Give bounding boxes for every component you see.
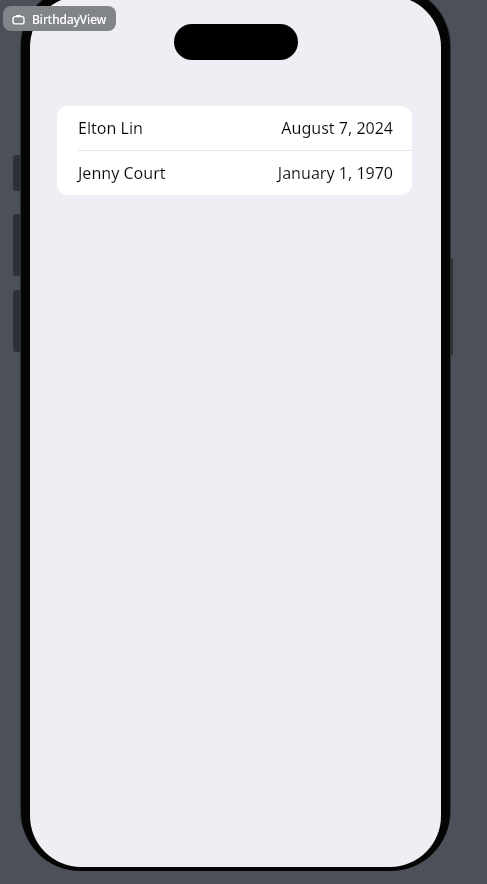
other: Preview — [12, 13, 25, 26]
staticText: August 7, 2024 — [281, 117, 393, 139]
button[interactable]: Jenny Court — [57, 151, 412, 195]
staticText: January 1, 1970 — [277, 162, 393, 184]
staticText: BirthdayView — [32, 11, 107, 27]
button[interactable]: Elton Lin — [57, 106, 412, 150]
staticText: Jenny Court — [78, 162, 166, 184]
staticText: Elton Lin — [78, 117, 143, 139]
button[interactable]: Preview — [3, 6, 116, 31]
